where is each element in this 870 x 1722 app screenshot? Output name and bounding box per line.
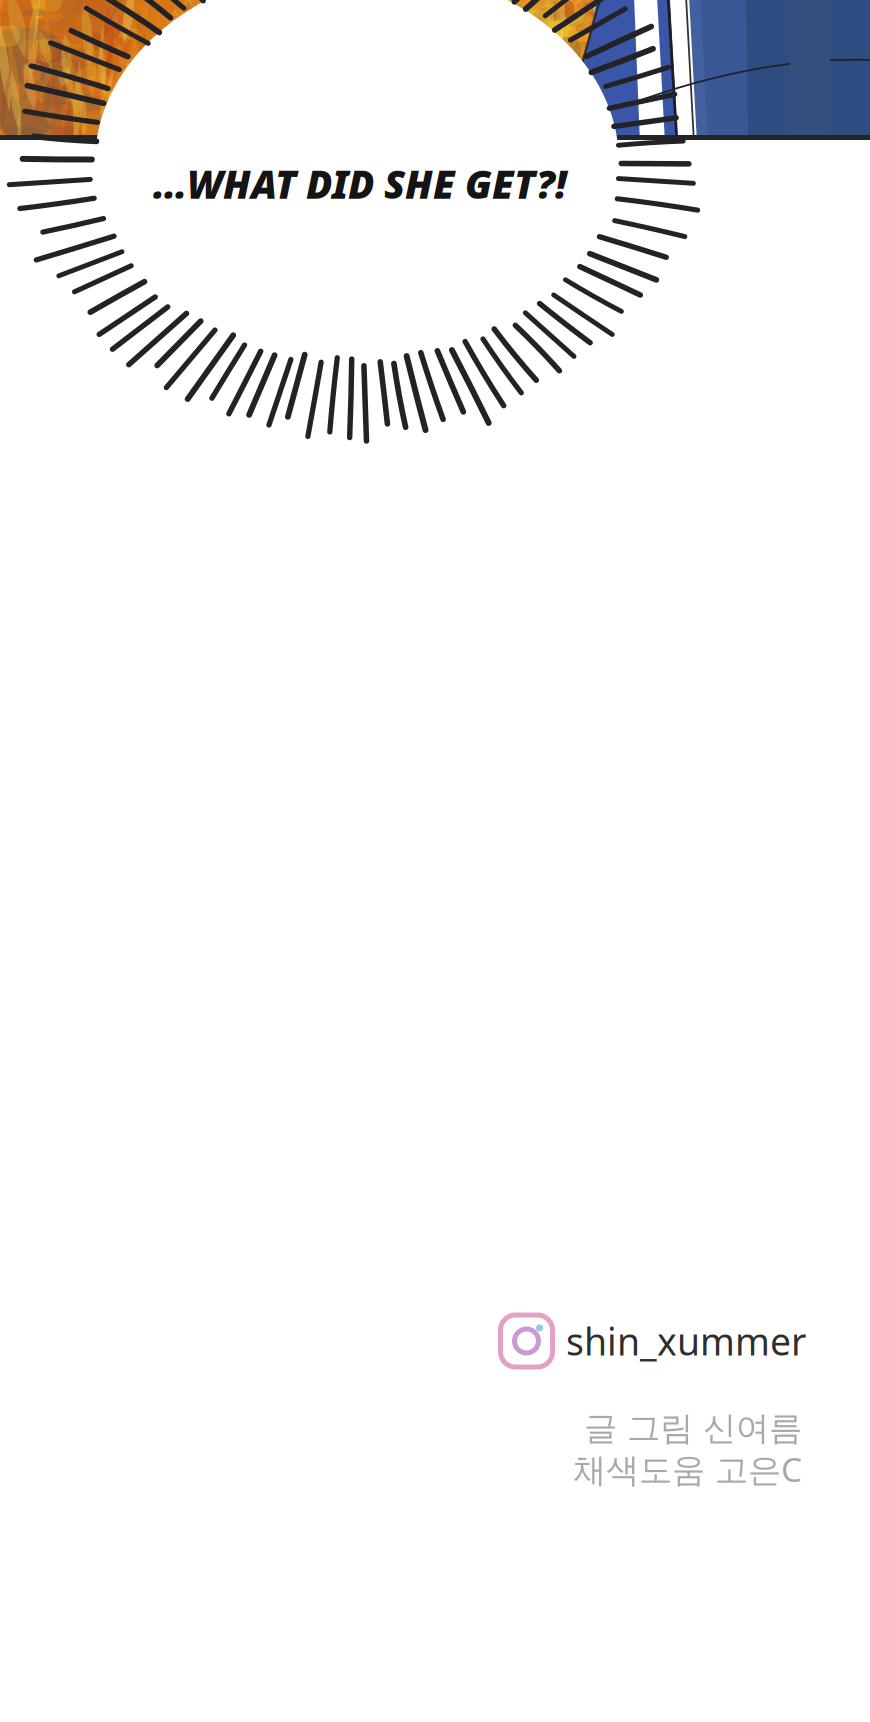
staticText: 글 그림 신여름	[584, 1408, 802, 1449]
staticText: 채색도움 고은C	[573, 1447, 802, 1491]
staticText: shin_xummer	[566, 1316, 806, 1366]
button[interactable]: shin_xummer	[500, 1313, 840, 1369]
staticText: …WHAT DID SHE GET?!	[153, 158, 567, 209]
